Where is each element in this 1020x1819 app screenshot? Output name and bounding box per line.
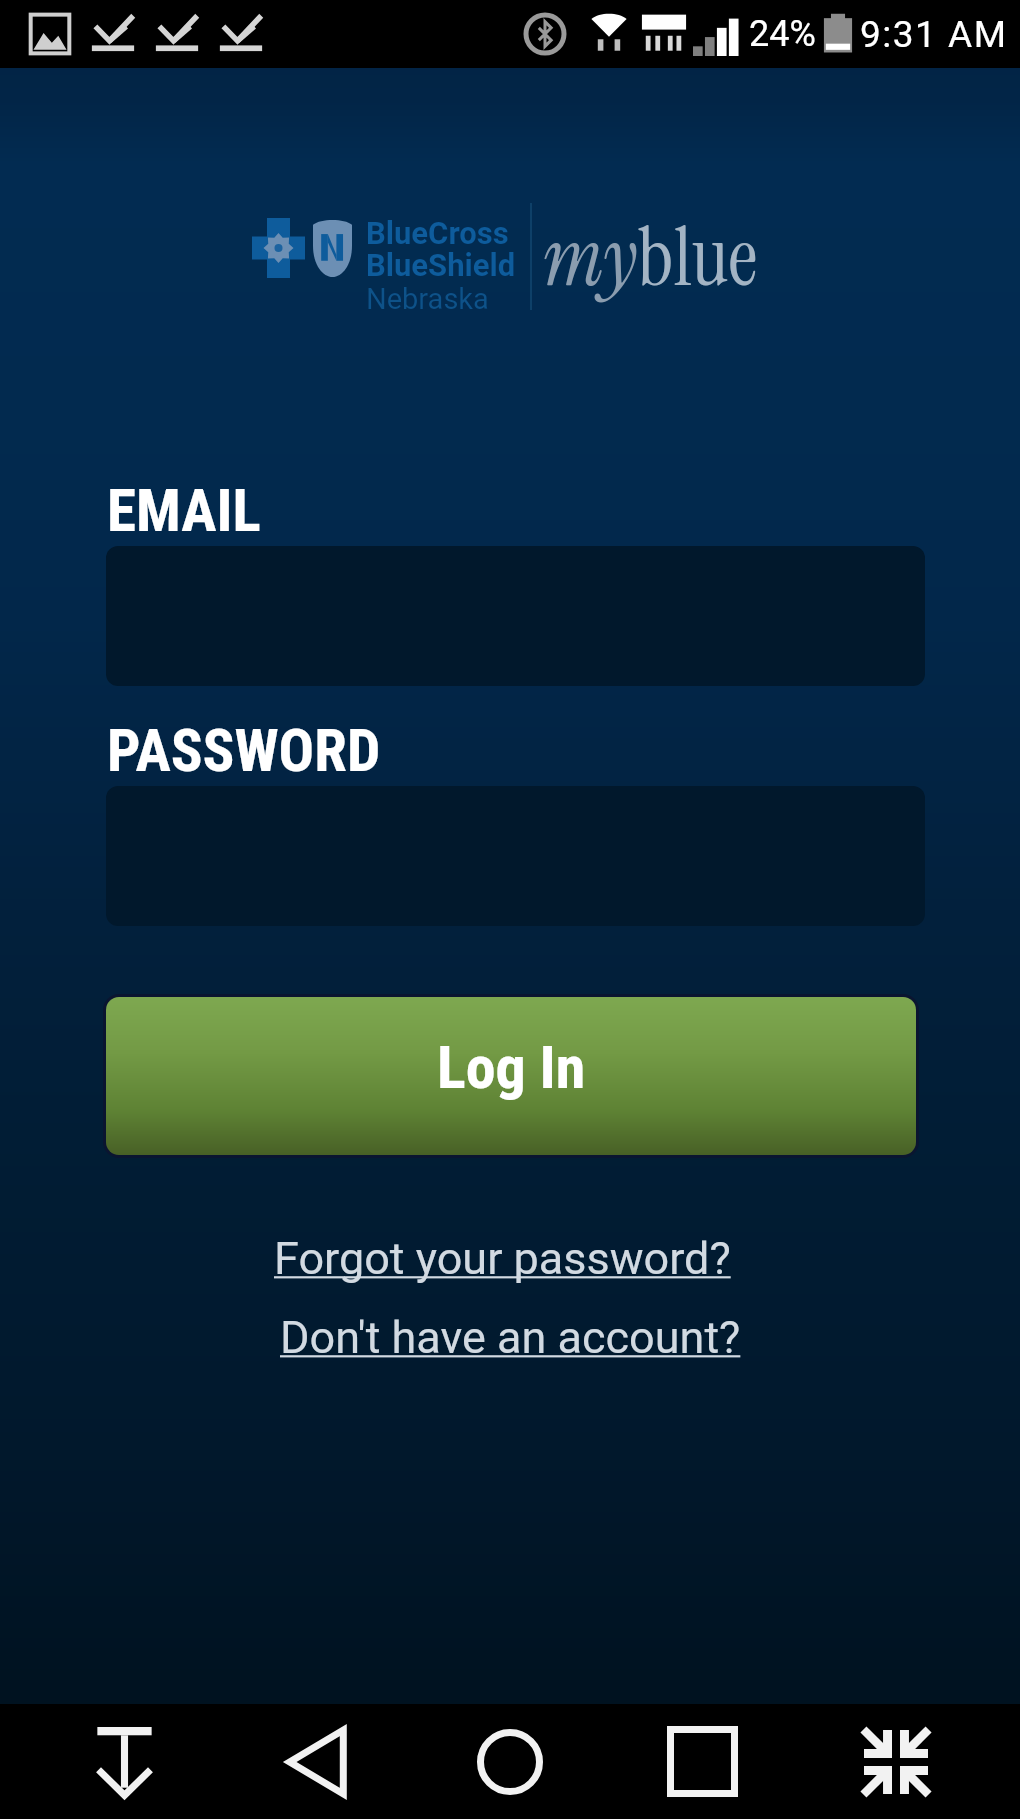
staticText: my xyxy=(543,205,638,310)
button[interactable]: Hide keyboard xyxy=(28,1704,220,1819)
staticText: PASSWORD xyxy=(107,716,381,785)
staticText: Nebraska xyxy=(366,282,489,316)
button[interactable]: Log In xyxy=(106,997,916,1155)
button[interactable]: Forgot your password? xyxy=(266,1229,739,1288)
staticText: BlueShield xyxy=(366,247,516,283)
staticText: EMAIL xyxy=(107,476,261,545)
staticText: 24% xyxy=(749,13,816,55)
staticText: BlueCross xyxy=(366,215,509,251)
staticText: Log In xyxy=(437,1032,586,1102)
staticText: blue xyxy=(638,205,758,310)
button[interactable]: Recent apps xyxy=(606,1704,799,1819)
button[interactable]: Home xyxy=(413,1704,606,1819)
button[interactable]: Don't have an account? xyxy=(272,1308,749,1367)
button[interactable]: Shrink screen xyxy=(799,1704,992,1819)
staticText: 9:31 AM xyxy=(860,13,1008,56)
button[interactable]: Back xyxy=(220,1704,413,1819)
